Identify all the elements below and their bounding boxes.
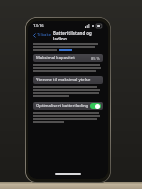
staticText: Tilbake <box>37 32 52 38</box>
button[interactable]: Maksimal kapasitet <box>33 54 103 62</box>
button[interactable]: Optimalisert batterilading <box>33 102 103 110</box>
staticText: Yteevne til maksimal ytelse <box>36 77 91 83</box>
button[interactable]: Tilbake <box>32 31 53 39</box>
staticText: Batteritilstand og lading <box>53 30 104 40</box>
staticText: 13:16 <box>33 23 44 29</box>
staticText: Maksimal kapasitet <box>36 55 75 61</box>
staticText: 85 % <box>91 56 100 61</box>
button[interactable]: Yteevne til maksimal ytelse <box>33 76 103 84</box>
staticText: Optimalisert batterilading <box>36 103 89 109</box>
button[interactable]: Optimalisert batterilading på <box>90 103 101 109</box>
